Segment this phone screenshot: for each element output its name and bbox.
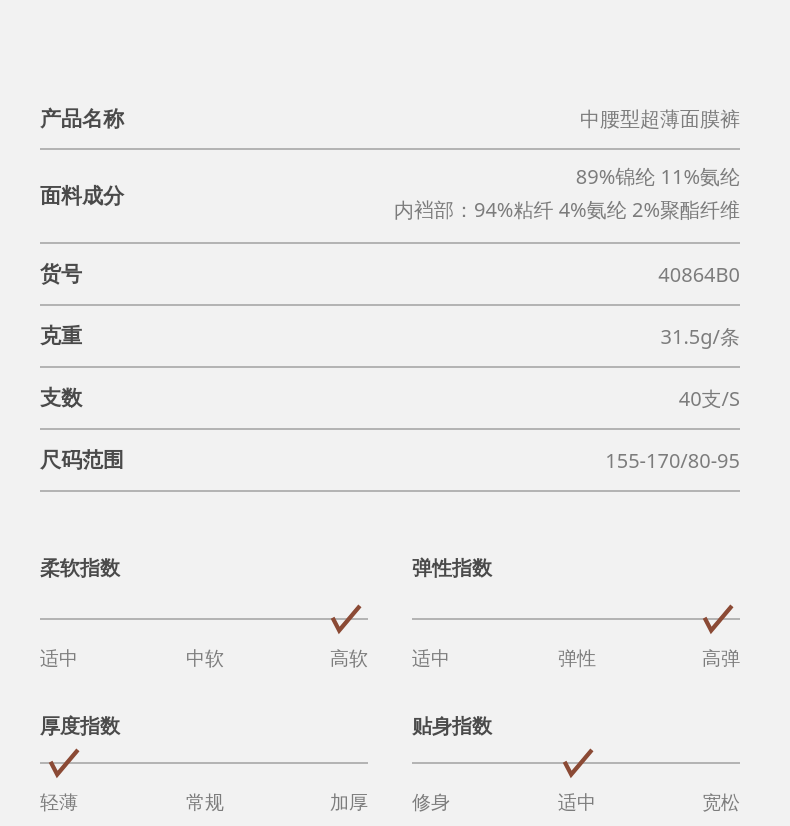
button[interactable]: 货号 — [40, 244, 740, 304]
button[interactable]: 弹性指数 — [412, 556, 740, 671]
button[interactable]: 柔软指数 — [40, 556, 368, 671]
staticText: 尺码范围 — [40, 447, 124, 473]
staticText: 40864B0 — [658, 261, 740, 288]
staticText: 89%锦纶 11%氨纶 — [575, 163, 740, 190]
staticText: 适中 — [412, 647, 450, 671]
other: Selected level — [332, 604, 362, 634]
button[interactable]: 产品名称 — [40, 90, 740, 148]
staticText: 厚度指数 — [40, 714, 120, 739]
staticText: 弹性指数 — [412, 556, 492, 581]
staticText: 支数 — [40, 385, 82, 411]
button[interactable]: 支数 — [40, 368, 740, 428]
button[interactable]: 克重 — [40, 306, 740, 366]
staticText: 中软 — [186, 647, 224, 671]
staticText: 31.5g/条 — [660, 323, 740, 350]
staticText: 柔软指数 — [40, 556, 120, 581]
other: Selected level — [564, 748, 594, 778]
staticText: 产品名称 — [40, 106, 124, 132]
other: Selected level — [50, 748, 80, 778]
staticText: 贴身指数 — [412, 714, 492, 739]
staticText: 155-170/80-95 — [605, 447, 740, 474]
staticText: 适中 — [40, 647, 78, 671]
staticText: 适中 — [558, 791, 596, 815]
staticText: 面料成分 — [40, 183, 124, 209]
staticText: 内裆部：94%粘纤 4%氨纶 2%聚酯纤维 — [393, 196, 740, 223]
button[interactable]: 尺码范围 — [40, 430, 740, 490]
staticText: 中腰型超薄面膜裤 — [580, 107, 740, 132]
staticText: 高软 — [330, 647, 368, 671]
staticText: 轻薄 — [40, 791, 78, 815]
staticText: 货号 — [40, 261, 82, 287]
staticText: 加厚 — [330, 791, 368, 815]
button[interactable]: 面料成分 — [40, 150, 740, 242]
staticText: 修身 — [412, 791, 450, 815]
staticText: 宽松 — [702, 791, 740, 815]
staticText: 克重 — [40, 323, 82, 349]
other: Selected level — [704, 604, 734, 634]
staticText: 40支/S — [678, 385, 740, 412]
staticText: 弹性 — [558, 647, 596, 671]
staticText: 常规 — [186, 791, 224, 815]
staticText: 高弹 — [702, 647, 740, 671]
button[interactable]: 厚度指数 — [40, 714, 368, 815]
button[interactable]: 贴身指数 — [412, 714, 740, 815]
